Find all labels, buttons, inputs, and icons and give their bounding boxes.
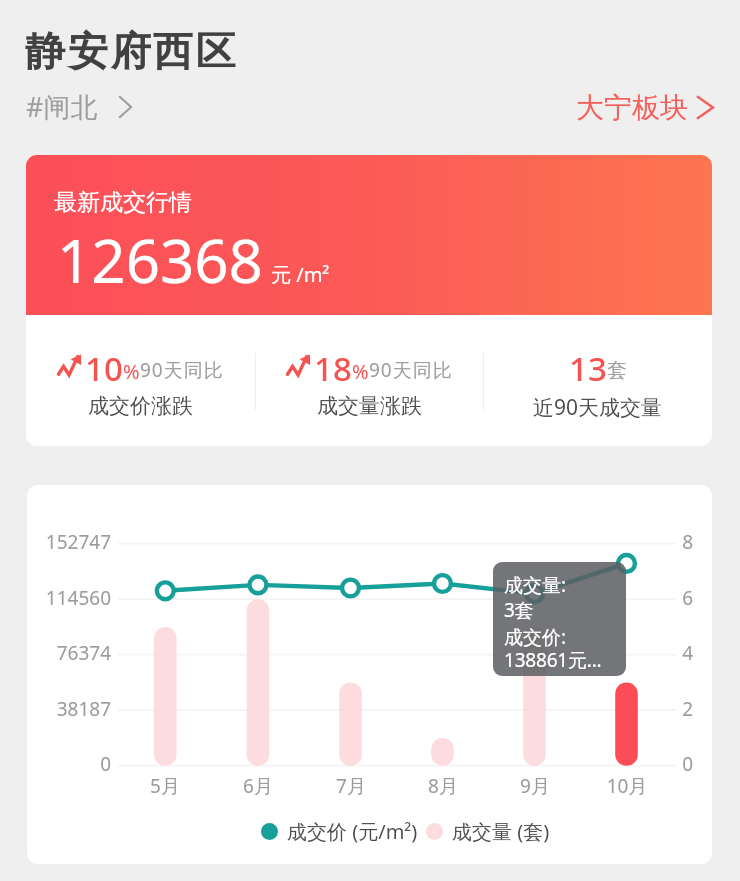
staticText: 6 [672,585,693,611]
staticText: 成交价: [504,624,567,650]
button[interactable]: 成交价 (元/m²) [261,818,550,845]
staticText: 最新成交行情 [54,188,192,217]
button[interactable]: #闸北 [26,88,131,125]
staticText: % [123,358,140,385]
staticText: 7月 [316,773,386,799]
button[interactable]: 10 [26,315,255,446]
staticText: 4 [672,640,693,666]
staticText: 大宁板块 [576,90,688,125]
staticText: 126368 [57,219,263,301]
staticText: 成交价 (元/m²) [287,818,418,845]
staticText: % [352,358,369,385]
staticText: 5月 [130,773,200,799]
staticText: 38187 [27,696,111,722]
staticText: 76374 [27,640,111,666]
staticText: 静安府西区 [24,26,237,76]
staticText: 套 [607,358,627,383]
staticText: 2 [672,696,693,722]
staticText: 18 [314,346,352,391]
staticText: 10 [85,346,123,391]
staticText: 10月 [592,773,662,799]
staticText: 成交量 (套) [452,818,550,845]
staticText: 3套 [504,597,534,623]
staticText: 90天同比 [140,357,224,383]
button[interactable]: 13 [483,315,712,446]
staticText: 近90天成交量 [483,393,712,422]
staticText: 8 [672,529,693,555]
staticText: 成交价涨跌 [26,393,255,419]
staticText: 元 /m² [271,261,330,288]
staticText: 9月 [500,773,570,799]
staticText: 138861元... [504,647,602,673]
staticText: 8月 [408,773,478,799]
staticText: 13 [569,346,607,391]
staticText: #闸北 [26,88,98,125]
button[interactable]: 大宁板块 [576,90,713,125]
staticText: 6月 [223,773,293,799]
staticText: 90天同比 [369,357,453,383]
staticText: 成交量涨跌 [255,393,484,419]
staticText: 0 [27,751,111,777]
staticText: 152747 [27,529,111,555]
staticText: 成交量: [504,572,567,598]
button[interactable]: 18 [255,315,484,446]
staticText: 114560 [27,585,111,611]
staticText: 0 [672,751,693,777]
